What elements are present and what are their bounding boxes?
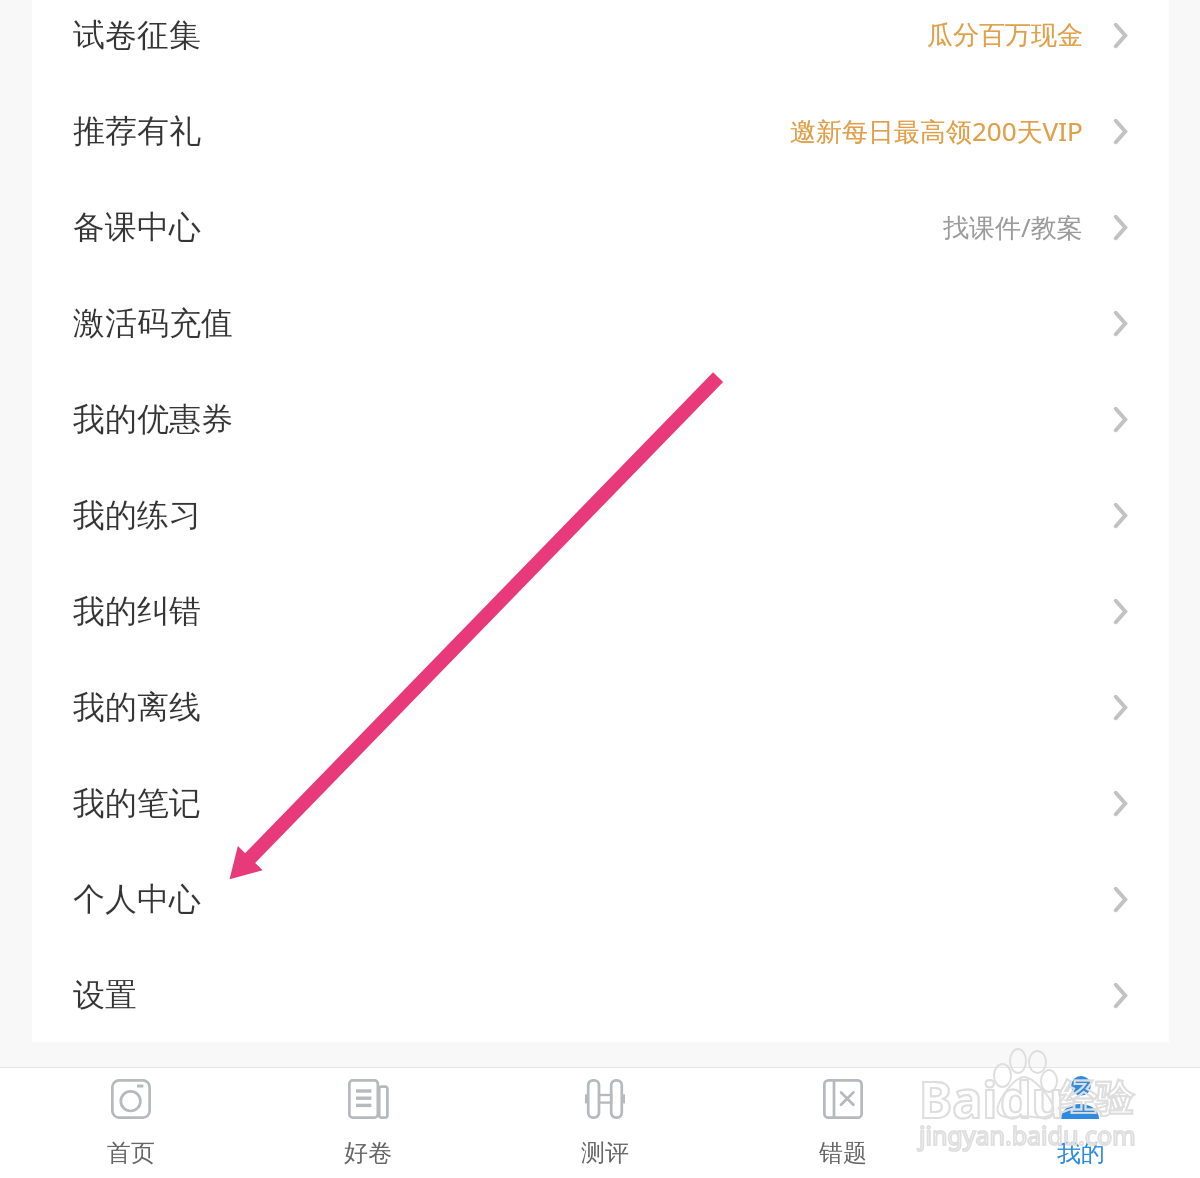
button[interactable]: 错题 bbox=[724, 1068, 962, 1178]
staticText: 激活码充值 bbox=[73, 303, 233, 343]
button[interactable]: 我的纠错 bbox=[32, 563, 1169, 659]
staticText: 首页 bbox=[107, 1138, 155, 1168]
button[interactable]: 激活码充值 bbox=[32, 275, 1169, 371]
button[interactable]: 我的 bbox=[962, 1068, 1200, 1178]
button[interactable]: 个人中心 bbox=[32, 851, 1169, 947]
staticText: 我的笔记 bbox=[73, 783, 201, 823]
staticText: 我的练习 bbox=[73, 495, 201, 535]
staticText: 瓜分百万现金 bbox=[927, 19, 1083, 52]
button[interactable]: 我的离线 bbox=[32, 659, 1169, 755]
staticText: 错题 bbox=[819, 1138, 867, 1168]
staticText: 我的纠错 bbox=[73, 591, 201, 631]
staticText: 测评 bbox=[581, 1138, 629, 1168]
staticText: 备课中心 bbox=[73, 207, 201, 247]
button[interactable]: 备课中心 bbox=[32, 179, 1169, 275]
staticText: 推荐有礼 bbox=[73, 111, 201, 151]
staticText: 我的离线 bbox=[73, 687, 201, 727]
staticText: 我的 bbox=[1057, 1138, 1105, 1168]
staticText: 设置 bbox=[73, 975, 137, 1015]
staticText: 找课件/教案 bbox=[943, 209, 1083, 245]
staticText: 邀新每日最高领200天VIP bbox=[790, 113, 1083, 149]
button[interactable]: 好卷 bbox=[249, 1068, 486, 1178]
button[interactable]: 设置 bbox=[32, 947, 1169, 1043]
staticText: 个人中心 bbox=[73, 879, 201, 919]
button[interactable]: 试卷征集 bbox=[32, 0, 1169, 83]
staticText: 我的优惠券 bbox=[73, 399, 233, 439]
staticText: 好卷 bbox=[344, 1138, 392, 1168]
button[interactable]: 我的练习 bbox=[32, 467, 1169, 563]
button[interactable]: 我的优惠券 bbox=[32, 371, 1169, 467]
staticText: 试卷征集 bbox=[73, 15, 201, 55]
button[interactable]: 我的笔记 bbox=[32, 755, 1169, 851]
button[interactable]: 首页 bbox=[12, 1068, 249, 1178]
button[interactable]: 测评 bbox=[486, 1068, 724, 1178]
button[interactable]: 推荐有礼 bbox=[32, 83, 1169, 179]
